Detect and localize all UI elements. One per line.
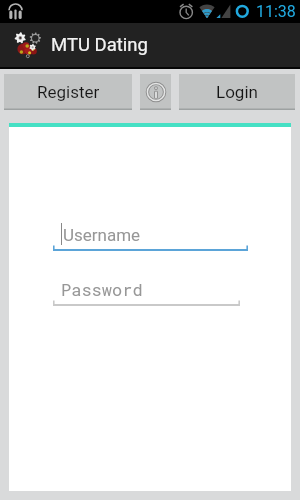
- staticText: Register: [37, 82, 100, 102]
- button[interactable]: About: [140, 74, 171, 110]
- button[interactable]: Register: [4, 74, 132, 110]
- staticText: 11:38: [256, 2, 296, 21]
- button[interactable]: Username: [53, 223, 248, 254]
- button[interactable]: Password: [53, 278, 240, 309]
- staticText: Password: [61, 278, 143, 300]
- staticText: Login: [216, 82, 258, 102]
- button[interactable]: Login: [179, 74, 295, 110]
- staticText: Username: [63, 225, 141, 245]
- staticText: MTU Dating: [51, 34, 148, 56]
